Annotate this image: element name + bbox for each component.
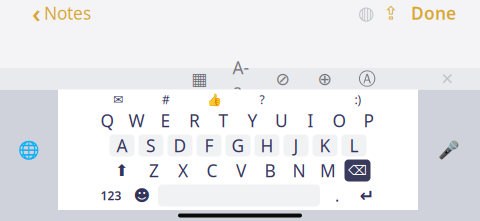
button[interactable]: Done [403,0,464,28]
staticText: ⬆ [115,161,128,180]
button[interactable]: R [182,109,207,131]
staticText: I [307,109,313,132]
staticText: Notes [44,1,91,24]
button[interactable]: Suggestion 1 [94,92,142,106]
staticText: G [231,134,244,157]
staticText: A [116,134,127,157]
staticText: ⌫ [348,163,367,178]
button[interactable]: ‹ [26,0,97,34]
button[interactable]: Z [141,159,166,181]
button[interactable]: Format option 3 [273,69,293,89]
button[interactable]: Close [436,69,458,89]
staticText: ◍ [358,2,374,24]
staticText: ⊕ [317,69,332,89]
staticText: Z [149,159,159,182]
staticText: D [173,134,186,157]
staticText: U [275,109,288,132]
button[interactable]: Suggestion 3 [190,92,238,106]
staticText: S [146,134,156,157]
staticText: F [204,134,213,157]
button[interactable]: Format option 4 [315,69,335,89]
staticText: R [189,109,200,132]
button[interactable]: Format option 1 [189,69,209,89]
button[interactable]: Suggestion 2 [142,92,190,106]
button[interactable]: W [124,109,149,131]
button[interactable]: X [170,159,195,181]
button[interactable]: Q [95,109,120,131]
button[interactable]: 123 [96,184,126,206]
staticText: H [260,134,273,157]
button[interactable]: J [283,134,308,156]
button[interactable]: Y [240,109,265,131]
staticText: # [162,91,170,107]
staticText: T [218,109,228,132]
button[interactable]: C [199,159,224,181]
button[interactable]: L [341,134,366,156]
button[interactable]: ⌫ [344,159,370,181]
staticText: ⇪ [383,2,399,24]
staticText: Ⓐ [358,68,375,90]
button[interactable]: B [257,159,282,181]
button[interactable]: V [228,159,253,181]
staticText: X [178,159,188,182]
button[interactable]: Format option 5 [357,69,377,89]
staticText: 123 [100,187,121,203]
button[interactable]: Return [354,184,380,206]
button[interactable]: G [225,134,250,156]
staticText: E [160,109,170,132]
button[interactable]: Suggestion 4 [238,92,286,106]
staticText: Q [100,109,114,132]
button[interactable]: S [138,134,163,156]
staticText: Aa [232,56,249,102]
staticText: K [319,134,330,157]
staticText: P [363,109,373,132]
staticText: ↵ [359,186,374,205]
button[interactable]: F [196,134,221,156]
button[interactable]: H [254,134,279,156]
button[interactable]: Dictate [418,90,480,210]
staticText: N [292,159,305,182]
staticText: B [264,159,275,182]
staticText: V [236,159,246,182]
staticText: M [320,159,336,182]
staticText: 🎤 [438,140,460,160]
button[interactable]: I [298,109,323,131]
button[interactable]: Shift [105,159,137,181]
staticText: Y [247,109,257,132]
staticText: ☻ [133,186,150,205]
staticText: Done [411,1,456,24]
button[interactable]: N [286,159,311,181]
staticText: . [335,185,339,206]
staticText: ▦ [191,69,207,89]
button[interactable]: M [315,159,340,181]
staticText: L [349,134,358,157]
staticText: ⊘ [275,69,290,89]
staticText: ‹ [32,0,41,30]
staticText: C [206,159,217,182]
staticText: ? [259,91,264,107]
button[interactable]: T [211,109,236,131]
button[interactable]: K [312,134,337,156]
button[interactable]: A [109,134,134,156]
button[interactable]: Emoji [130,184,154,206]
button[interactable]: O [327,109,352,131]
button[interactable]: P [356,109,381,131]
staticText: O [332,109,346,132]
button[interactable]: U [269,109,294,131]
staticText: ✉ [113,93,123,106]
button[interactable]: . [324,184,350,206]
button[interactable]: Next keyboard [0,90,58,210]
staticText: :) [354,91,361,107]
staticText: J [293,134,298,157]
button[interactable]: E [153,109,178,131]
staticText: ✕ [440,70,453,88]
button[interactable]: Share [379,3,403,23]
staticText: 👍 [206,93,221,106]
button[interactable]: Markup [353,3,379,23]
button[interactable]: D [167,134,192,156]
staticText: W [128,109,144,132]
button[interactable]: Suggestion 6 [334,92,382,106]
button[interactable]: Format option 2 [231,69,251,89]
